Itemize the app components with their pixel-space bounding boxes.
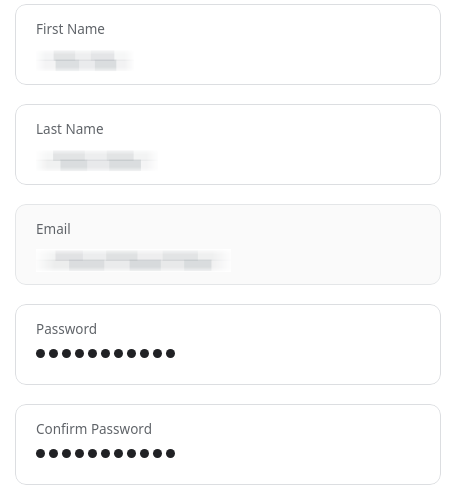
staticText: Confirm Password (36, 420, 152, 438)
staticText: Last Name (36, 120, 104, 138)
staticText: First Name (36, 20, 105, 38)
button[interactable]: First Name (15, 4, 441, 85)
button[interactable]: Password (15, 304, 441, 385)
button[interactable]: Confirm Password (15, 404, 441, 485)
staticText: Password (36, 320, 98, 338)
button[interactable]: Last Name (15, 104, 441, 185)
button[interactable]: Email (15, 204, 441, 285)
staticText: Email (36, 220, 71, 238)
